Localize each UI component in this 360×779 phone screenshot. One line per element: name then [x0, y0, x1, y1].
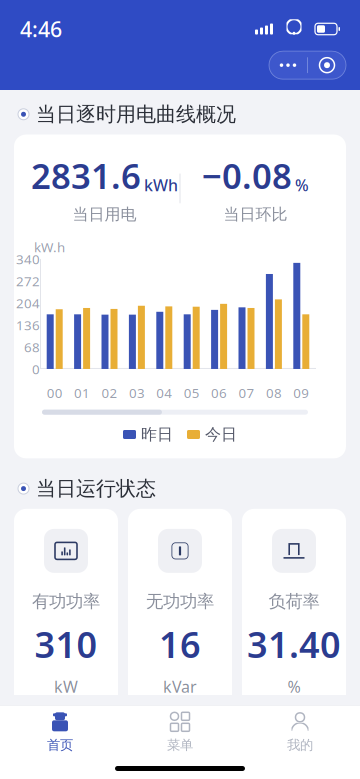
staticText: 我的 — [287, 737, 313, 753]
staticText: 136 — [16, 316, 40, 334]
staticText: 08 — [266, 384, 282, 402]
staticText: 今日 — [205, 425, 237, 444]
button[interactable]: Close — [308, 51, 346, 79]
staticText: −0.08 — [202, 153, 292, 199]
staticText: 04 — [156, 384, 172, 402]
staticText: % — [295, 174, 309, 196]
staticText: 菜单 — [167, 737, 193, 753]
staticText: 05 — [184, 384, 200, 402]
button[interactable]: 负荷率 — [242, 509, 346, 714]
staticText: 当日逐时用电曲线概况 — [36, 102, 236, 127]
button[interactable]: 无功功率 — [128, 509, 232, 714]
staticText: 07 — [238, 384, 254, 402]
button[interactable]: 有功功率 — [14, 509, 118, 714]
staticText: 01 — [74, 384, 90, 402]
staticText: kW — [54, 676, 78, 697]
staticText: 首页 — [47, 737, 73, 753]
staticText: 09 — [293, 384, 309, 402]
staticText: 310 — [34, 620, 97, 668]
staticText: 当日环比 — [223, 205, 287, 224]
staticText: 0 — [32, 360, 40, 378]
staticText: 204 — [16, 294, 40, 312]
staticText: 无功功率 — [146, 591, 214, 612]
staticText: 2831.6 — [31, 153, 141, 199]
staticText: 当日运行状态 — [36, 476, 156, 501]
button[interactable]: 菜单 — [120, 706, 240, 758]
staticText: 02 — [101, 384, 117, 402]
staticText: 00 — [47, 384, 63, 402]
staticText: 03 — [129, 384, 145, 402]
staticText: 负荷率 — [268, 591, 319, 612]
staticText: 340 — [16, 250, 40, 268]
button[interactable]: More — [269, 51, 307, 79]
staticText: 68 — [24, 338, 40, 356]
staticText: 4:46 — [20, 15, 62, 43]
staticText: 昨日 — [141, 425, 173, 444]
staticText: 06 — [211, 384, 227, 402]
staticText: 16 — [159, 620, 201, 668]
staticText: 当日运行环境 — [36, 732, 156, 756]
staticText: kVar — [163, 676, 197, 697]
button[interactable]: 首页 — [0, 706, 120, 758]
staticText: 31.40 — [247, 620, 341, 668]
staticText: % — [287, 676, 300, 697]
staticText: 当日用电 — [72, 205, 136, 224]
staticText: kW.h — [34, 238, 65, 256]
staticText: kWh — [144, 174, 178, 196]
staticText: 有功功率 — [32, 591, 100, 612]
staticText: 272 — [16, 272, 40, 290]
button[interactable]: 我的 — [240, 706, 360, 758]
